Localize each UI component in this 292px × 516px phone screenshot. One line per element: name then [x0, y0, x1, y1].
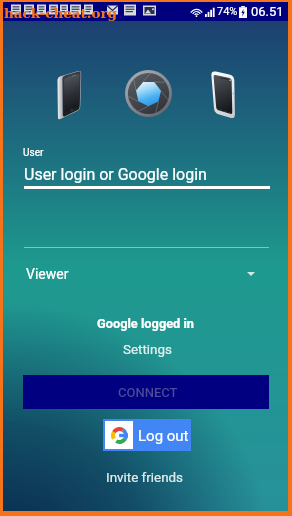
staticText: 74% — [217, 5, 238, 18]
staticText: User — [23, 147, 44, 159]
button[interactable]: Invite friends — [101, 463, 193, 489]
button[interactable]: User login or Google login — [24, 165, 207, 184]
staticText: User login or Google login — [24, 165, 207, 184]
button[interactable]: CONNECT — [23, 375, 269, 409]
staticText: 06.51 — [251, 4, 284, 19]
staticText: Viewer — [26, 266, 69, 282]
button[interactable]: Settings — [117, 337, 181, 363]
staticText: Log out — [138, 427, 189, 445]
staticText: Invite friends — [106, 470, 183, 486]
staticText: CONNECT — [118, 385, 178, 400]
button[interactable]: Log out — [103, 419, 191, 451]
staticText: Google logged in — [97, 316, 195, 331]
staticText: Settings — [123, 342, 172, 358]
staticText: hack-cheat.org — [4, 5, 118, 21]
button[interactable]: Viewer — [3, 249, 288, 291]
